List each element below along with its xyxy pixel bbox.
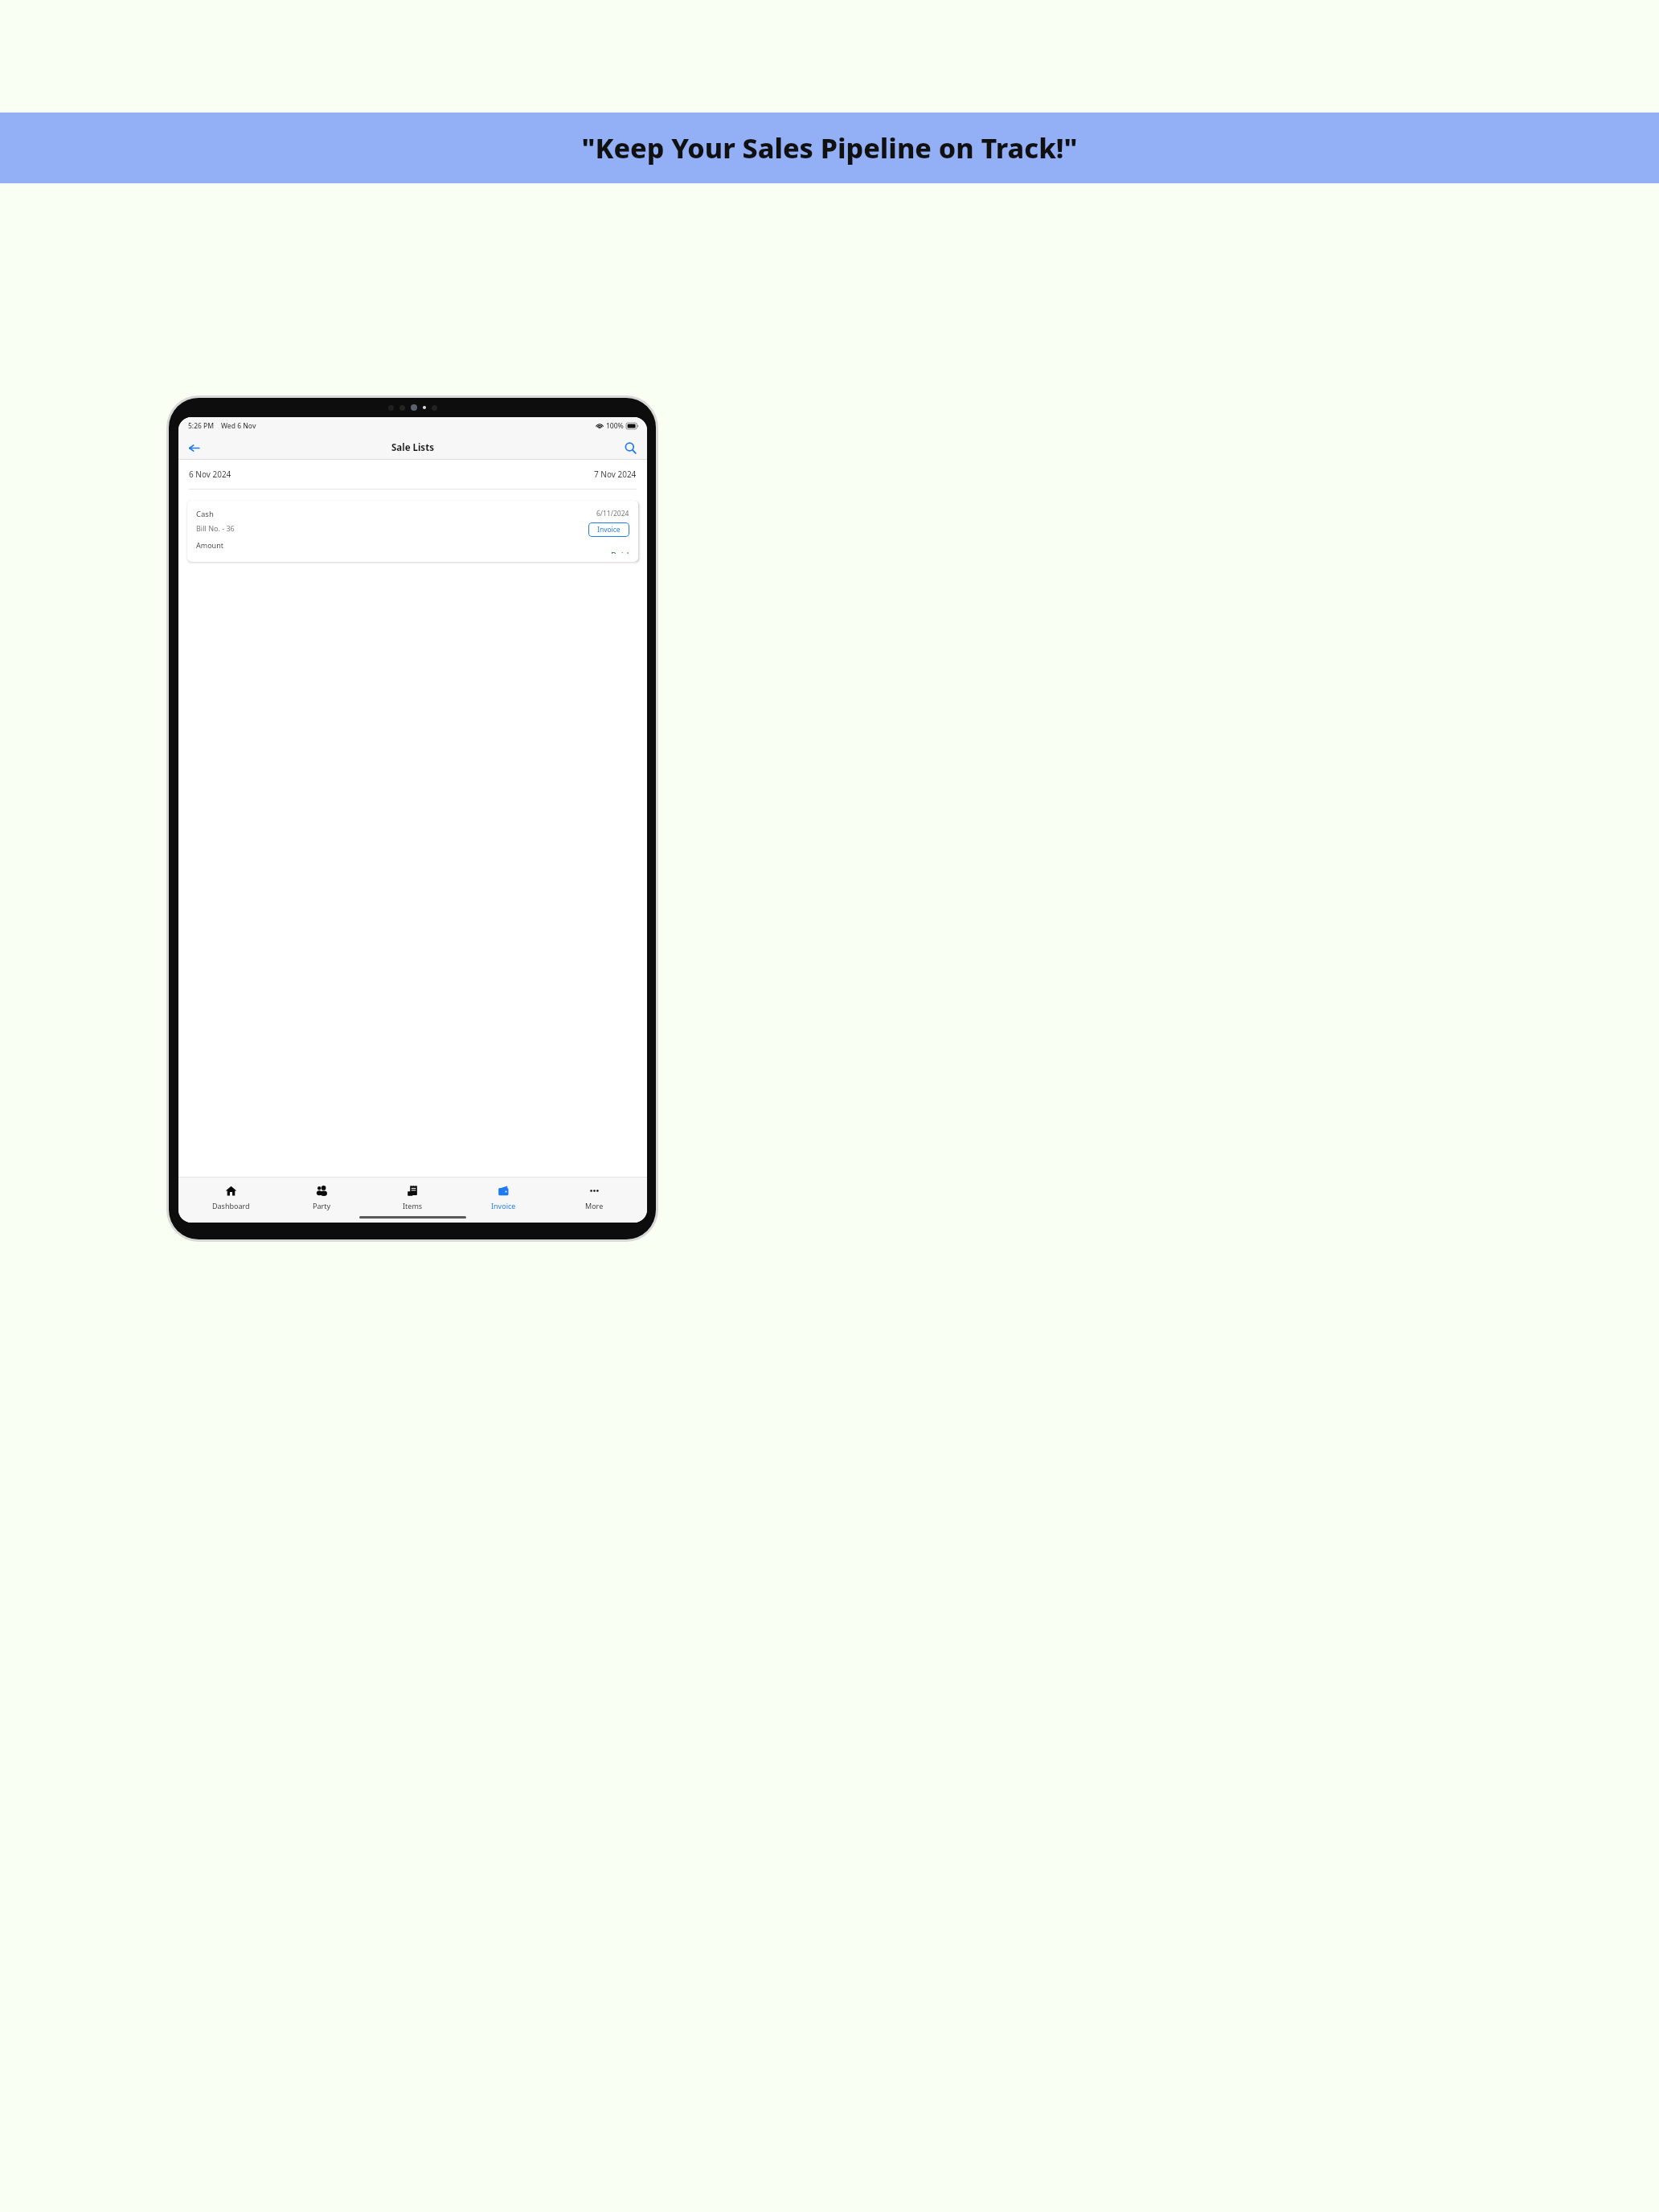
- staticText: More: [585, 1201, 604, 1210]
- staticText: Dashboard: [212, 1201, 250, 1210]
- staticText: Paid: [611, 549, 629, 554]
- button[interactable]: 6 Nov 2024: [189, 469, 231, 480]
- staticText: Invoice: [597, 525, 621, 535]
- staticText: Cash: [196, 509, 214, 519]
- button[interactable]: Back: [183, 437, 204, 458]
- button[interactable]: Search: [620, 437, 641, 458]
- button[interactable]: Party: [284, 1183, 360, 1212]
- staticText: 6/11/2024: [596, 509, 629, 518]
- staticText: 6 Nov 2024: [189, 469, 231, 480]
- staticText: 7 Nov 2024: [594, 469, 637, 480]
- button[interactable]: Invoice: [465, 1183, 542, 1212]
- staticText: "Keep Your Sales Pipeline on Track!": [581, 129, 1078, 166]
- staticText: 5:26 PM: [188, 421, 215, 431]
- button[interactable]: Invoice: [588, 522, 629, 537]
- button[interactable]: Cash: [187, 501, 638, 562]
- staticText: Bill No. - 36: [196, 523, 235, 533]
- staticText: Invoice: [491, 1201, 516, 1210]
- button[interactable]: Items: [375, 1183, 451, 1212]
- staticText: Items: [403, 1201, 423, 1210]
- button[interactable]: Dashboard: [193, 1183, 269, 1212]
- staticText: Wed 6 Nov: [221, 421, 256, 431]
- staticText: 100%: [606, 421, 624, 431]
- staticText: Amount: [196, 540, 223, 550]
- button[interactable]: More: [556, 1183, 633, 1212]
- staticText: Sale Lists: [391, 441, 434, 454]
- staticText: Party: [313, 1201, 331, 1210]
- button[interactable]: 7 Nov 2024: [594, 469, 637, 480]
